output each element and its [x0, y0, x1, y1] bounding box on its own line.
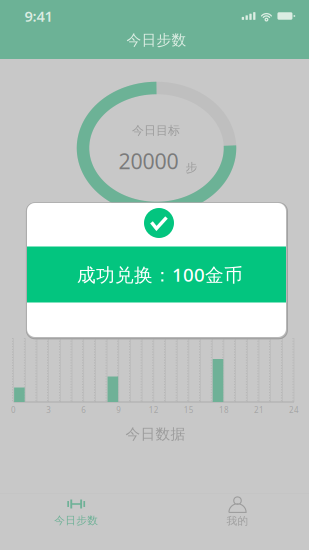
staticText: 18 — [219, 404, 229, 415]
staticText: 成功兑换：100金币 — [77, 262, 243, 287]
button[interactable]: 我的 — [160, 493, 309, 550]
staticText: 15 — [184, 404, 194, 415]
staticText: 3 — [46, 404, 51, 415]
staticText: 步 — [185, 160, 197, 175]
staticText: 21 — [254, 404, 264, 415]
staticText: 今日步数 — [126, 31, 186, 49]
staticText: 今日目标 — [132, 123, 180, 138]
staticText: 0 — [11, 404, 16, 415]
staticText: 12 — [149, 404, 159, 415]
staticText: 9:41 — [24, 6, 52, 26]
staticText: 9 — [116, 404, 121, 415]
staticText: 今日数据 — [125, 425, 185, 443]
button[interactable]: 今日步数 — [0, 493, 153, 550]
staticText: 今日步数 — [54, 514, 98, 527]
staticText: 20000 — [118, 147, 178, 175]
staticText: 我的 — [226, 514, 248, 528]
staticText: 6 — [81, 404, 86, 415]
staticText: 24 — [289, 404, 299, 415]
